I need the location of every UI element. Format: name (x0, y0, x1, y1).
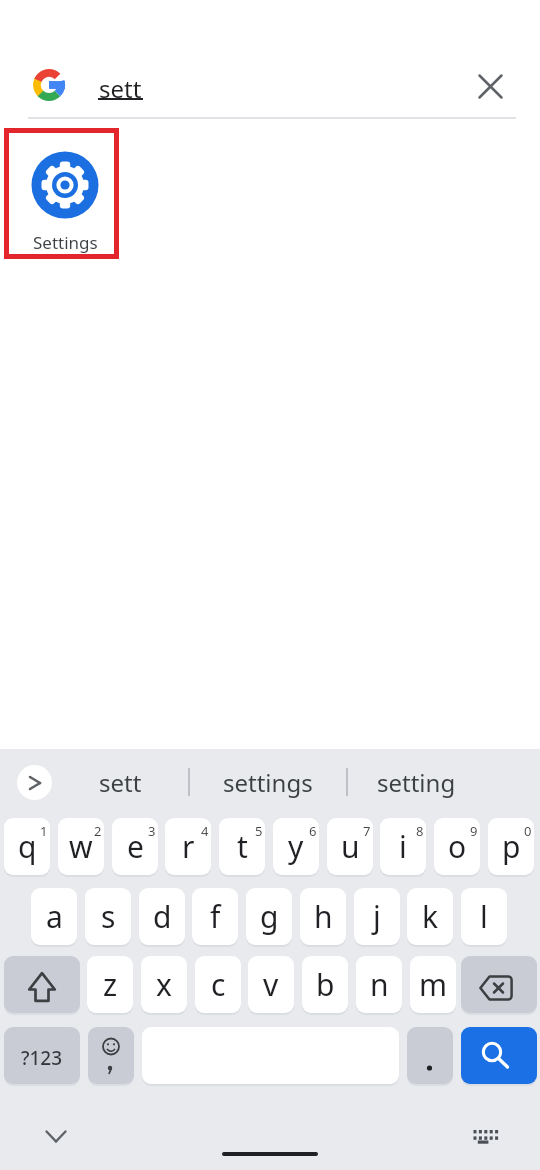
staticText: 4 (201, 822, 209, 840)
staticText: 0 (524, 822, 532, 840)
staticText: o (448, 826, 467, 867)
button[interactable]: i (380, 818, 426, 875)
staticText: t (237, 826, 248, 867)
staticText: 9 (470, 822, 478, 840)
button[interactable]: r (165, 818, 211, 875)
staticText: b (316, 964, 335, 1005)
staticText: 8 (416, 822, 424, 840)
button[interactable]: h (300, 888, 346, 945)
staticText: y (288, 826, 304, 867)
staticText: w (69, 826, 93, 867)
staticText: sett (99, 766, 142, 799)
button[interactable]: s (85, 888, 131, 945)
button[interactable]: f (192, 888, 238, 945)
button[interactable]: d (139, 888, 185, 945)
button[interactable]: c (195, 956, 241, 1013)
staticText: d (153, 896, 172, 937)
button[interactable]: t (219, 818, 265, 875)
staticText: s (101, 896, 116, 937)
staticText: f (210, 896, 221, 937)
staticText: 3 (148, 822, 156, 840)
button[interactable] (461, 1027, 537, 1084)
button[interactable]: u (327, 818, 373, 875)
button[interactable] (464, 1116, 504, 1156)
staticText: x (156, 964, 172, 1005)
staticText: i (399, 826, 407, 867)
button[interactable]: v (248, 956, 294, 1013)
button[interactable] (407, 1027, 453, 1084)
button[interactable]: k (407, 888, 453, 945)
staticText: v (263, 964, 279, 1005)
button[interactable]: sett (60, 755, 180, 809)
staticText: u (341, 826, 360, 867)
button[interactable]: e (112, 818, 158, 875)
button[interactable]: j (354, 888, 400, 945)
button[interactable]: settings (195, 755, 340, 809)
button[interactable]: sett (0, 55, 460, 117)
button[interactable]: z (87, 956, 133, 1013)
staticText: k (422, 896, 439, 937)
button[interactable]: x (141, 956, 187, 1013)
staticText: n (370, 964, 389, 1005)
button[interactable]: q (4, 818, 50, 875)
staticText: g (260, 896, 279, 937)
staticText: 5 (255, 822, 263, 840)
staticText: setting (377, 766, 456, 799)
staticText: 6 (309, 822, 317, 840)
button[interactable]: Settings (13, 140, 117, 252)
button[interactable] (17, 765, 52, 800)
staticText: l (480, 896, 488, 937)
button[interactable]: ?123 (4, 1027, 80, 1084)
staticText: settings (223, 766, 313, 799)
staticText: c (211, 964, 226, 1005)
staticText: q (18, 826, 37, 867)
staticText: 7 (363, 822, 371, 840)
staticText: sett (99, 72, 142, 105)
button[interactable]: m (410, 956, 456, 1013)
staticText: e (127, 826, 144, 867)
button[interactable]: setting (350, 755, 482, 809)
button[interactable]: b (302, 956, 348, 1013)
button[interactable] (461, 956, 537, 1013)
staticText: p (502, 826, 521, 867)
button[interactable]: o (434, 818, 480, 875)
staticText: j (373, 896, 381, 937)
staticText: r (182, 826, 195, 867)
button[interactable] (4, 956, 80, 1013)
staticText: h (314, 896, 333, 937)
button[interactable]: a (31, 888, 77, 945)
staticText: Settings (33, 231, 98, 254)
button[interactable]: g (246, 888, 292, 945)
button[interactable] (88, 1027, 134, 1084)
button[interactable] (36, 1116, 76, 1156)
staticText: z (103, 964, 118, 1005)
staticText: m (419, 964, 448, 1005)
staticText: 1 (40, 822, 48, 840)
button[interactable]: n (356, 956, 402, 1013)
button[interactable]: p (488, 818, 534, 875)
staticText: a (46, 896, 63, 937)
button[interactable]: y (273, 818, 319, 875)
button[interactable]: l (461, 888, 507, 945)
staticText: ?123 (21, 1045, 63, 1071)
button[interactable] (467, 63, 513, 109)
staticText: 2 (94, 822, 102, 840)
button[interactable]: w (58, 818, 104, 875)
